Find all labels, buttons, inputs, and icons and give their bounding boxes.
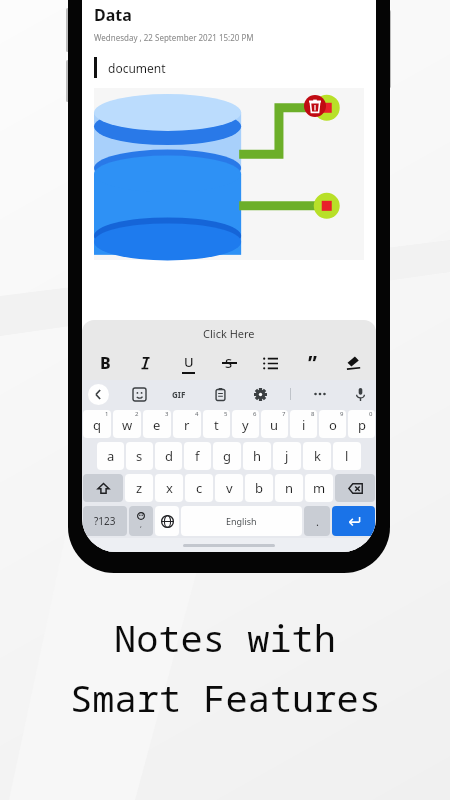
- button[interactable]: f: [184, 442, 211, 470]
- staticText: v: [226, 479, 233, 497]
- staticText: GIF: [172, 389, 186, 400]
- button[interactable]: ?123: [83, 506, 127, 536]
- staticText: j: [285, 447, 289, 465]
- staticText: c: [196, 479, 203, 497]
- button[interactable]: Click Here: [82, 320, 376, 346]
- staticText: English: [226, 515, 257, 527]
- staticText: p: [358, 416, 366, 434]
- staticText: n: [285, 479, 294, 497]
- staticText: 1: [105, 410, 109, 418]
- staticText: i: [302, 416, 306, 434]
- button[interactable]: Clipboard: [210, 384, 230, 404]
- button[interactable]: Back: [88, 384, 109, 405]
- button[interactable]: Settings: [250, 384, 270, 404]
- staticText: ?123: [94, 514, 116, 528]
- button[interactable]: Quote: [299, 350, 325, 376]
- button[interactable]: e: [143, 410, 171, 438]
- staticText: m: [313, 479, 326, 497]
- staticText: Smart Features: [70, 672, 381, 722]
- button[interactable]: Change language: [155, 506, 179, 536]
- button[interactable]: Emoji: [129, 506, 153, 536]
- staticText: Wednesday , 22 September 2021 15:20 PM: [94, 32, 254, 43]
- button[interactable]: y: [232, 410, 259, 438]
- button[interactable]: Underline: [175, 350, 201, 376]
- button[interactable]: Delete: [304, 95, 326, 117]
- staticText: g: [223, 447, 231, 465]
- staticText: q: [93, 416, 101, 434]
- button[interactable]: x: [155, 474, 183, 502]
- staticText: d: [165, 447, 173, 465]
- button[interactable]: k: [303, 442, 331, 470]
- staticText: 4: [195, 410, 199, 418]
- staticText: s: [136, 447, 143, 465]
- staticText: b: [255, 479, 263, 497]
- staticText: f: [195, 447, 200, 465]
- staticText: Data: [94, 4, 132, 26]
- button[interactable]: English: [181, 506, 302, 536]
- button[interactable]: Bold: [92, 350, 118, 376]
- button[interactable]: Enter: [332, 506, 375, 536]
- staticText: 8: [311, 410, 315, 418]
- button[interactable]: a: [97, 442, 124, 470]
- button[interactable]: t: [203, 410, 230, 438]
- staticText: a: [107, 447, 115, 465]
- staticText: e: [153, 416, 161, 434]
- button[interactable]: c: [185, 474, 213, 502]
- button[interactable]: Italic: [133, 350, 159, 376]
- button[interactable]: p: [348, 410, 375, 438]
- staticText: x: [166, 479, 173, 497]
- staticText: ,: [140, 520, 142, 530]
- button[interactable]: Highlight: [340, 350, 366, 376]
- staticText: w: [122, 416, 133, 434]
- button[interactable]: GIF: [168, 385, 190, 404]
- staticText: 3: [165, 410, 169, 418]
- staticText: 5: [224, 410, 228, 418]
- button[interactable]: i: [290, 410, 317, 438]
- staticText: 9: [340, 410, 344, 418]
- staticText: 2: [135, 410, 139, 418]
- button[interactable]: Strikethrough: [216, 350, 242, 376]
- button[interactable]: d: [155, 442, 182, 470]
- button[interactable]: m: [305, 474, 333, 502]
- button[interactable]: s: [126, 442, 153, 470]
- staticText: z: [136, 479, 143, 497]
- staticText: 6: [253, 410, 257, 418]
- staticText: B: [100, 352, 111, 374]
- button[interactable]: r: [173, 410, 201, 438]
- button[interactable]: l: [333, 442, 361, 470]
- staticText: document: [108, 60, 166, 76]
- staticText: h: [253, 447, 262, 465]
- staticText: t: [214, 416, 219, 434]
- staticText: .: [316, 514, 319, 529]
- staticText: r: [184, 416, 190, 434]
- staticText: U: [184, 353, 194, 371]
- staticText: Notes with: [114, 612, 336, 662]
- staticText: u: [270, 416, 279, 434]
- button[interactable]: j: [273, 442, 301, 470]
- button[interactable]: z: [125, 474, 153, 502]
- button[interactable]: o: [319, 410, 346, 438]
- button[interactable]: h: [243, 442, 271, 470]
- button[interactable]: Bullet list: [257, 350, 283, 376]
- button[interactable]: Stickers: [129, 384, 149, 404]
- staticText: k: [314, 447, 321, 465]
- button[interactable]: .: [304, 506, 330, 536]
- staticText: ”: [308, 350, 317, 376]
- button[interactable]: w: [113, 410, 141, 438]
- staticText: 7: [282, 410, 286, 418]
- button[interactable]: g: [213, 442, 241, 470]
- button[interactable]: q: [83, 410, 111, 438]
- button[interactable]: Voice input: [350, 384, 370, 404]
- button[interactable]: More: [310, 384, 330, 404]
- staticText: y: [242, 416, 249, 434]
- staticText: 0: [369, 410, 373, 418]
- staticText: S: [225, 354, 233, 372]
- staticText: l: [345, 447, 349, 465]
- staticText: Click Here: [203, 326, 255, 341]
- button[interactable]: v: [215, 474, 243, 502]
- button[interactable]: u: [261, 410, 288, 438]
- button[interactable]: n: [275, 474, 303, 502]
- button[interactable]: Shift: [83, 474, 123, 502]
- button[interactable]: b: [245, 474, 273, 502]
- button[interactable]: Backspace: [335, 474, 375, 502]
